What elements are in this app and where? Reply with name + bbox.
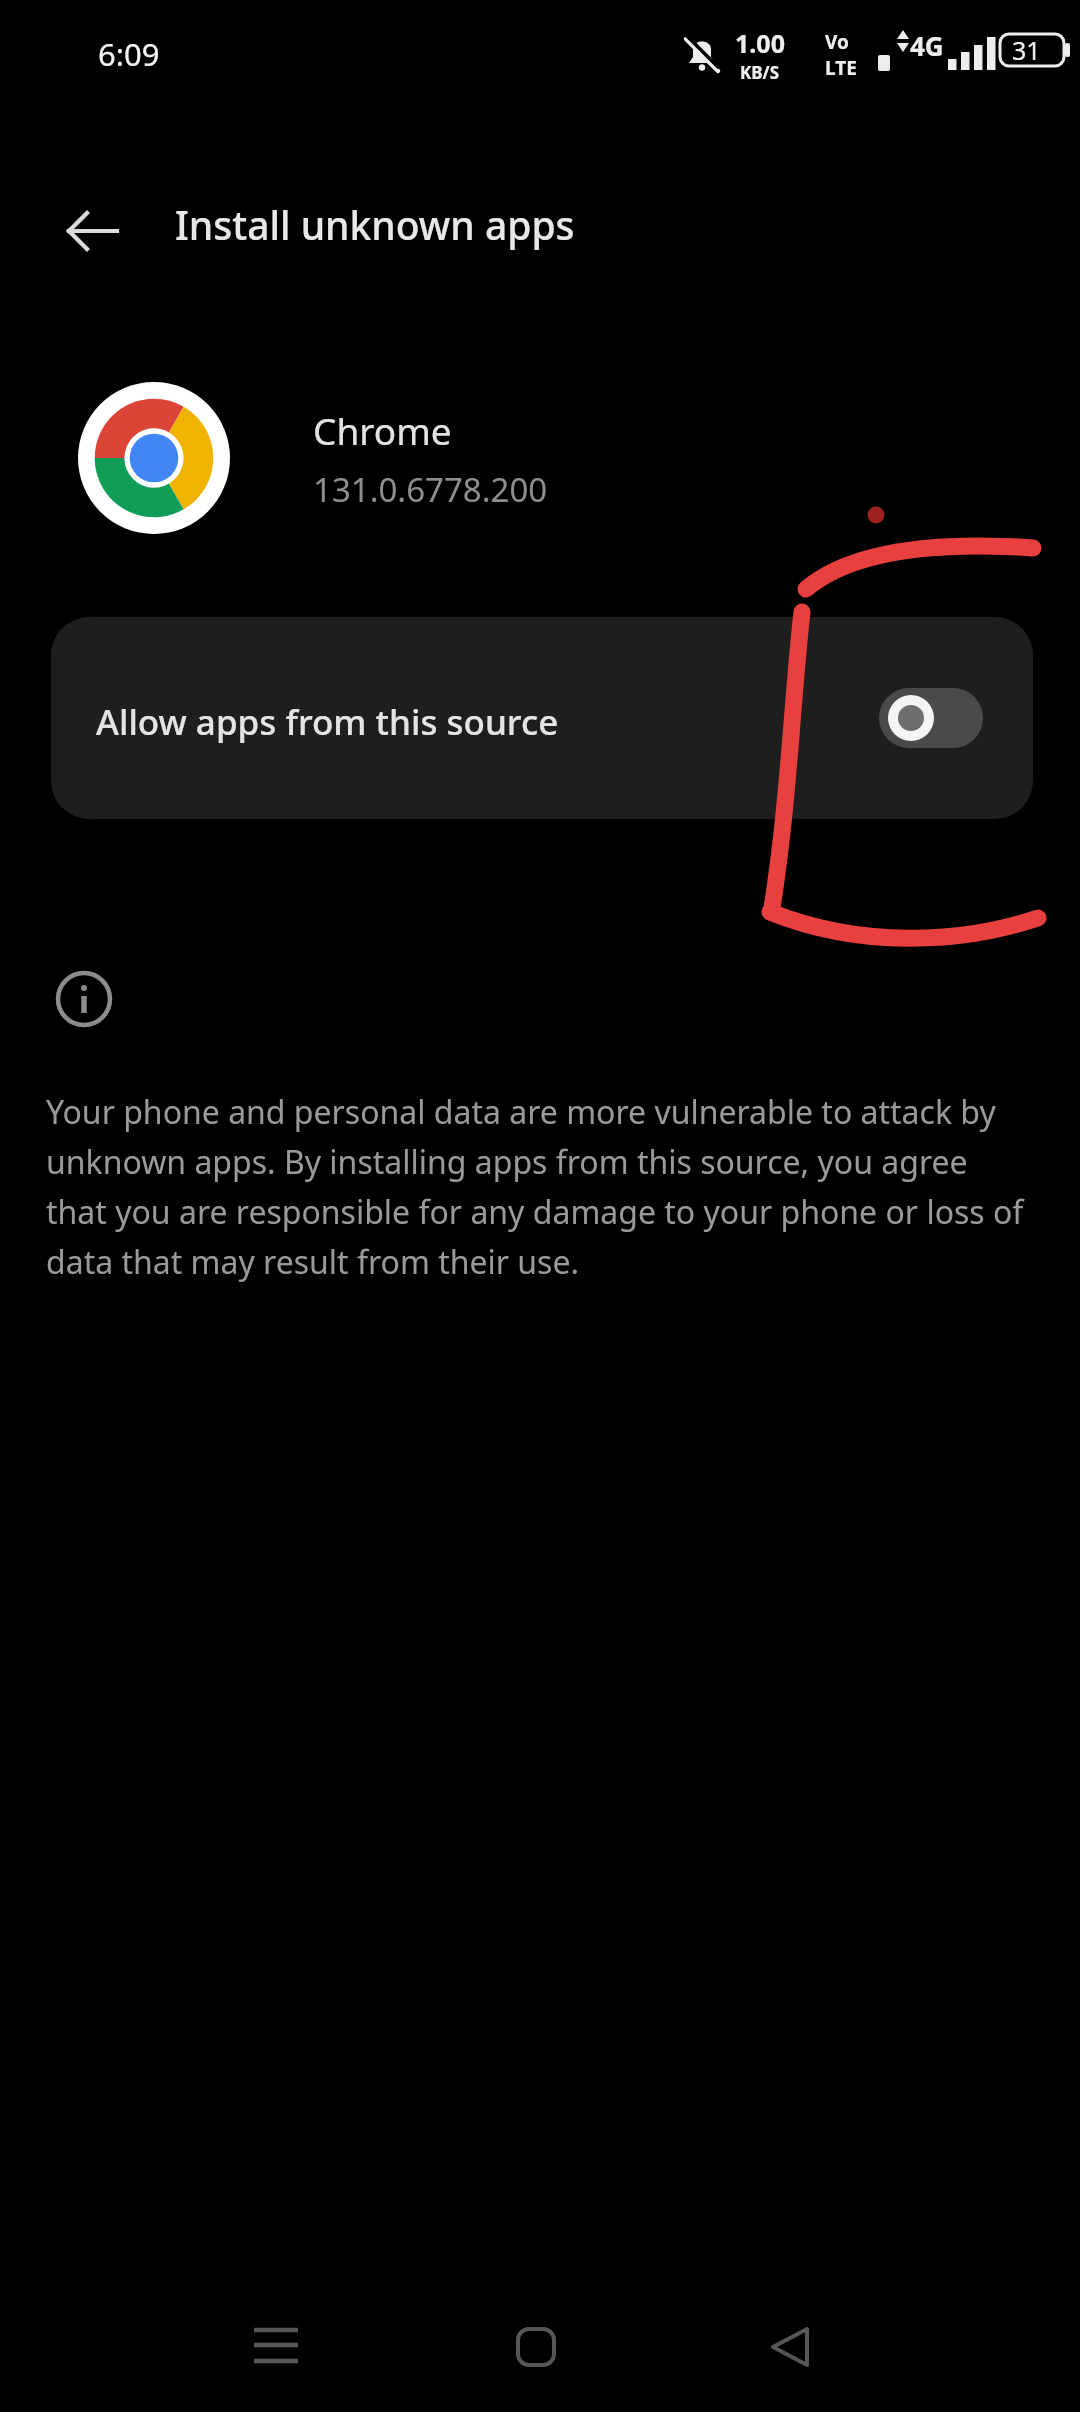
staticText: Vo (825, 29, 849, 55)
staticText: LTE (825, 55, 857, 81)
button[interactable]: Home (476, 2292, 596, 2402)
staticText: 1.00 (735, 26, 785, 60)
button[interactable]: Back (40, 178, 146, 284)
staticText: 6:09 (98, 33, 160, 75)
staticText: Allow apps from this source (96, 698, 559, 746)
button[interactable]: Allow apps from this source toggle (877, 677, 987, 759)
staticText: KB/S (740, 61, 780, 84)
staticText: Your phone and personal data are more vu… (46, 1090, 1036, 1284)
button[interactable]: Back (730, 2292, 850, 2402)
staticText: Chrome (313, 405, 452, 455)
staticText: 131.0.6778.200 (313, 467, 548, 512)
staticText: Install unknown apps (175, 198, 575, 251)
button[interactable]: Recent apps (216, 2292, 336, 2402)
staticText: 31 (1012, 33, 1041, 67)
staticText: 4G (910, 28, 944, 63)
button[interactable]: Allow apps from this source (51, 617, 1033, 819)
